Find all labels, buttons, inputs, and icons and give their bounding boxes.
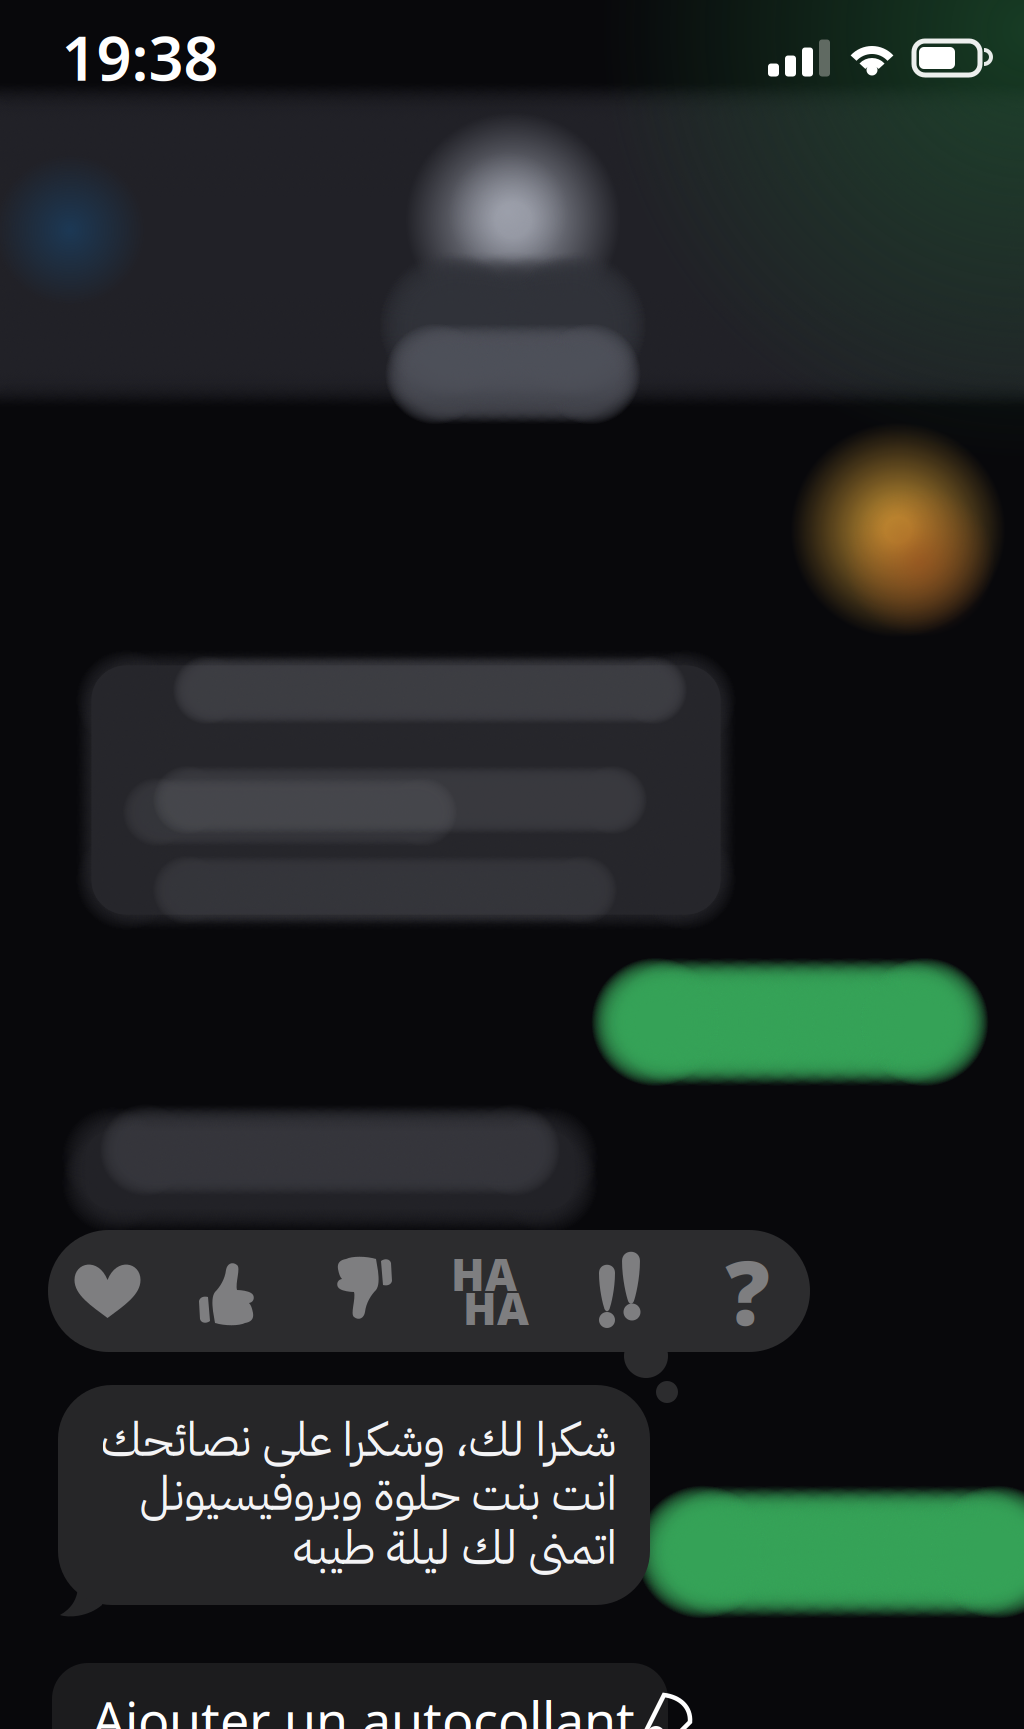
staticText: شكرا لك، وشكرا على نصائحك — [100, 1405, 616, 1475]
button[interactable]: Ajouter un autocollant — [52, 1663, 668, 1729]
button[interactable]: Exclamation — [555, 1230, 685, 1352]
button[interactable]: Like — [167, 1230, 295, 1352]
staticText: 19:38 — [61, 16, 218, 98]
staticText: HA — [463, 1279, 529, 1337]
staticText: Ajouter un autocollant — [92, 1685, 635, 1729]
button[interactable]: Dislike — [295, 1230, 425, 1352]
button[interactable]: Question — [685, 1230, 810, 1352]
staticText: HA — [451, 1245, 517, 1303]
staticText: اتمنى لك ليلة طيبه — [293, 1513, 616, 1583]
button[interactable]: Love — [48, 1230, 167, 1352]
button[interactable]: Haha — [425, 1230, 555, 1352]
staticText: ? — [725, 1233, 769, 1349]
staticText: انت بنت حلوة وبروفيسيونل — [139, 1459, 616, 1529]
